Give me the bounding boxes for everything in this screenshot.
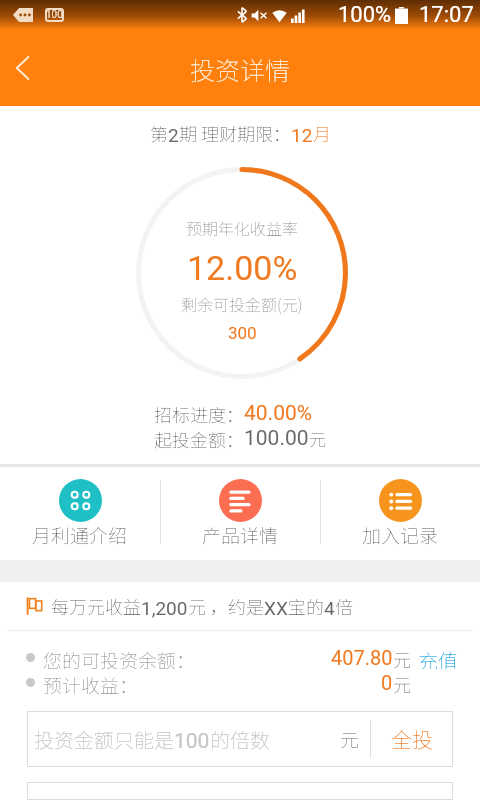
staticText: 1,200 <box>141 597 188 619</box>
staticText: 300 <box>228 323 257 343</box>
staticText: 您的可投资余额： <box>43 646 196 669</box>
staticText: 元 <box>393 646 411 669</box>
staticText: 100% <box>338 2 392 28</box>
staticText: 招标进度： <box>154 401 244 426</box>
staticText: 元 <box>393 671 411 694</box>
staticText: 100 <box>46 9 63 21</box>
staticText: 产品详情 <box>202 521 279 549</box>
staticText: 407.80 <box>331 646 393 669</box>
staticText: 12 <box>291 124 313 146</box>
staticText: 充值 <box>418 646 458 669</box>
staticText: 月 <box>313 120 331 146</box>
staticText: 预计收益： <box>43 671 139 694</box>
staticText: 月利通介绍 <box>32 521 128 549</box>
staticText: 每万元收益 <box>51 593 141 619</box>
staticText: 0 <box>381 671 393 694</box>
button[interactable]: 加入记录 <box>321 467 480 560</box>
button[interactable]: 月利通介绍 <box>0 467 160 560</box>
staticText: XX <box>264 597 288 619</box>
staticText: 起投金额： <box>154 426 244 451</box>
button[interactable]: 产品详情 <box>161 467 320 560</box>
staticText: 元 <box>309 426 326 451</box>
staticText: 2 <box>168 124 179 146</box>
staticText: 100.00 <box>244 426 309 451</box>
staticText: 倍 <box>335 593 353 619</box>
staticText: 全投 <box>391 724 433 754</box>
staticText: 的倍数 <box>210 725 270 754</box>
staticText: 12.00% <box>187 248 298 288</box>
staticText: 元 <box>340 725 360 753</box>
staticText: 投资详情 <box>190 51 291 87</box>
button[interactable]: 充值 <box>418 646 458 669</box>
staticText: 40.00% <box>244 401 313 426</box>
staticText: 投资金额只能是 <box>34 725 174 754</box>
button[interactable]: 全投 <box>371 711 453 767</box>
staticText: 元 ，约是 <box>188 593 264 619</box>
staticText: 预期年化收益率 <box>186 216 299 239</box>
staticText: 100 <box>174 729 210 754</box>
staticText: 剩余可投金额(元) <box>181 292 303 315</box>
staticText: 期 理财期限： <box>179 120 291 146</box>
staticText: 第 <box>150 120 168 146</box>
staticText: 宝的 <box>288 593 324 619</box>
staticText: 4 <box>324 597 335 619</box>
staticText: 加入记录 <box>362 521 439 549</box>
staticText: 17:07 <box>419 2 474 28</box>
button[interactable]: Back <box>0 46 44 90</box>
